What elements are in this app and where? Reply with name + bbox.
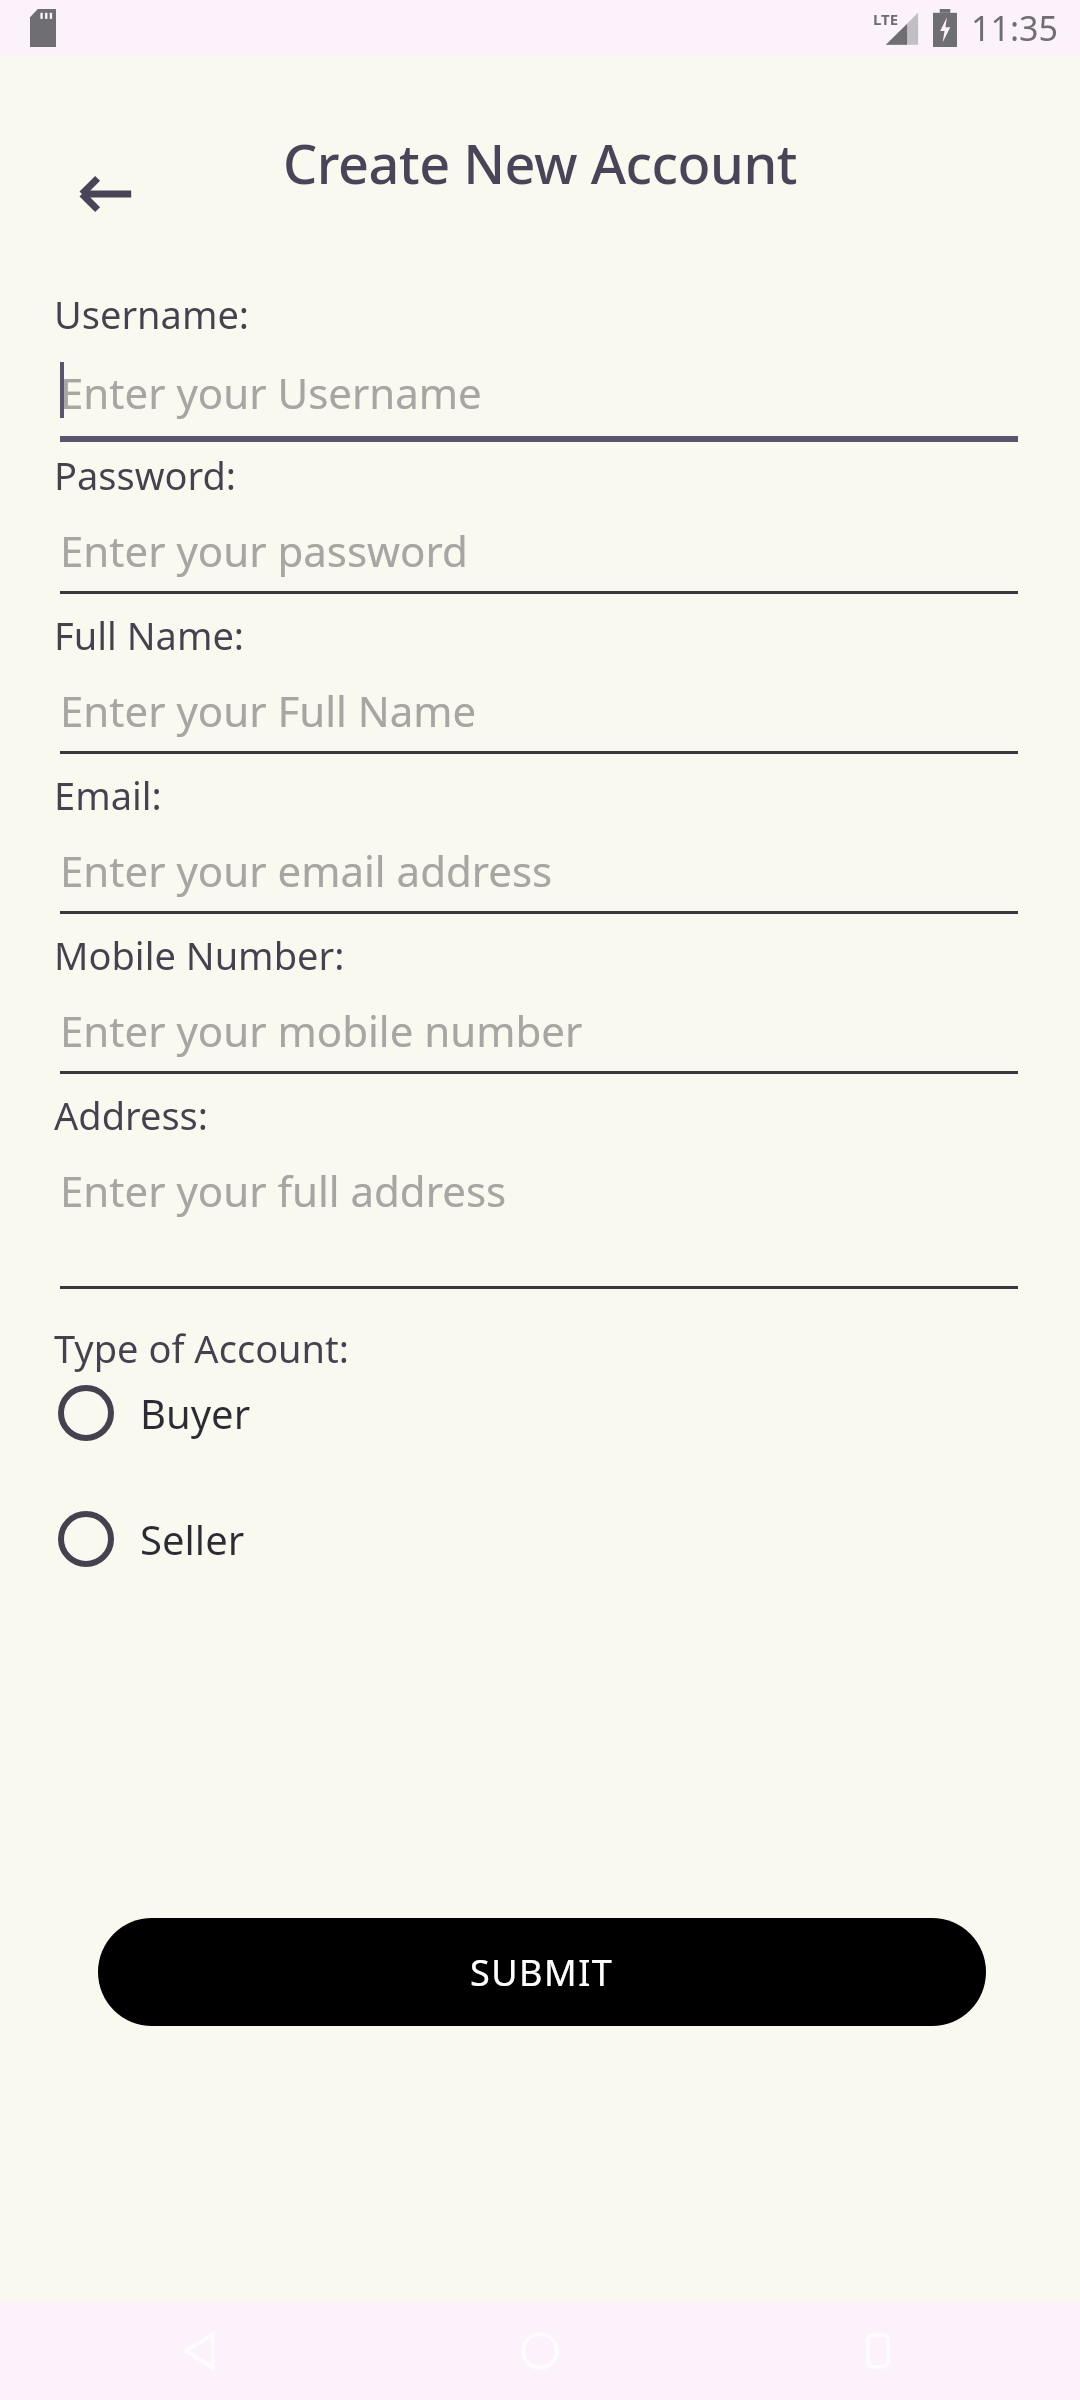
staticText: Enter your full address (60, 1162, 507, 1219)
staticText: Buyer (140, 1386, 251, 1440)
staticText: Enter your password (60, 522, 468, 579)
button[interactable] (60, 668, 1018, 757)
button[interactable]: Seller (54, 1500, 384, 1578)
staticText: Type of Account: (54, 1322, 349, 1374)
staticText: Seller (140, 1512, 245, 1566)
button[interactable]: Buyer (54, 1374, 384, 1452)
button[interactable] (60, 1148, 1018, 1292)
staticText: Enter your mobile number (60, 1002, 583, 1059)
staticText: Username: (54, 288, 250, 340)
button[interactable]: SUBMIT (98, 1918, 986, 2026)
staticText: Password: (54, 449, 237, 501)
button[interactable] (60, 508, 1018, 597)
staticText: Email: (54, 769, 162, 821)
staticText: Enter your Full Name (60, 682, 477, 739)
staticText: 11:35 (971, 5, 1058, 51)
button[interactable] (60, 828, 1018, 917)
staticText: Enter your email address (60, 842, 553, 899)
staticText: Full Name: (54, 609, 245, 661)
staticText: Enter your Username (60, 364, 482, 421)
staticText: Address: (54, 1089, 208, 1141)
staticText: SUBMIT (470, 1948, 614, 1997)
button[interactable]: Back (60, 152, 152, 236)
staticText: LTE (873, 9, 899, 29)
button[interactable] (60, 350, 1018, 442)
staticText: Create New Account (0, 126, 1080, 200)
button[interactable] (60, 988, 1018, 1077)
staticText: Mobile Number: (54, 929, 345, 981)
